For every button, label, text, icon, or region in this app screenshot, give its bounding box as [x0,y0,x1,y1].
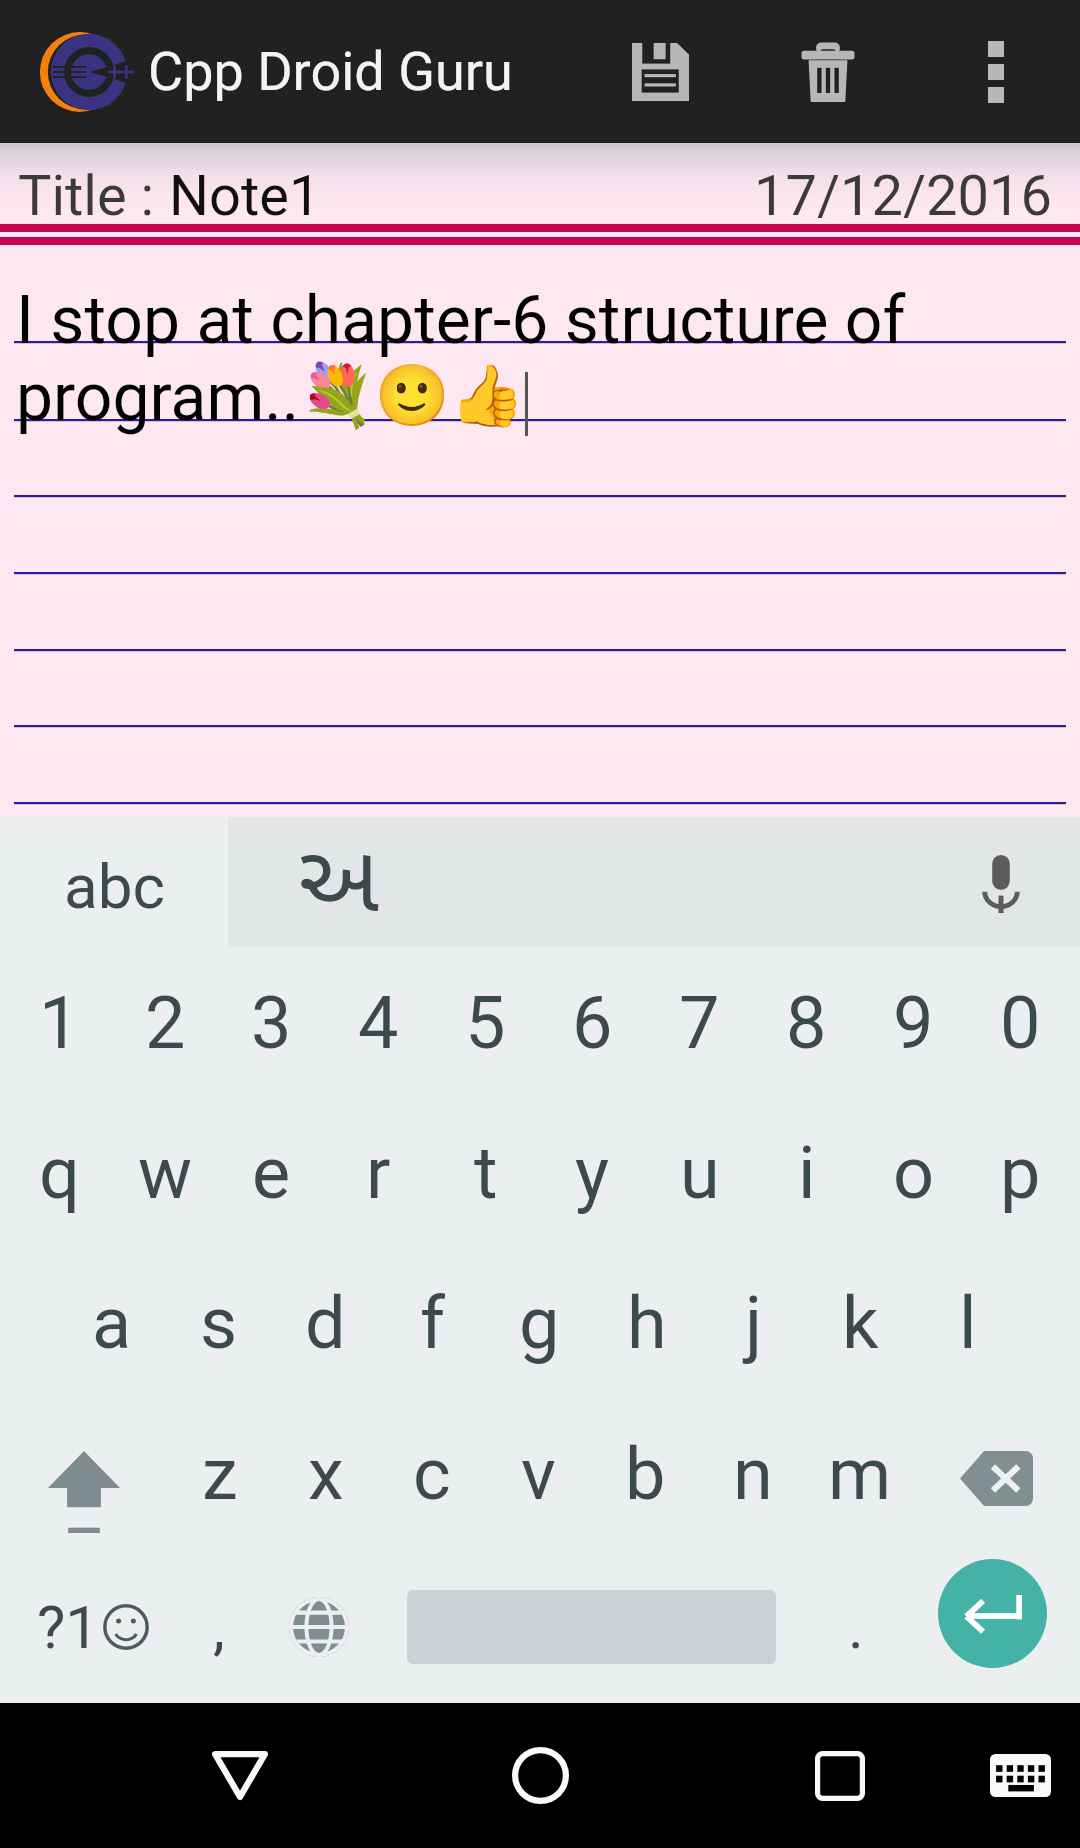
staticText: p [1000,1131,1041,1215]
button[interactable]: Backspace [913,1398,1080,1550]
button[interactable]: a [59,1248,165,1398]
staticText: f [420,1281,446,1365]
staticText: 9 [893,981,934,1065]
button[interactable]: અ [228,817,1080,947]
button[interactable]: 9 [860,947,967,1098]
staticText: 2 [145,981,186,1065]
staticText: 💐🙂👍 [300,360,525,430]
button[interactable]: q [6,1098,112,1248]
button[interactable]: v [485,1398,592,1550]
button[interactable]: m [806,1398,913,1550]
staticText: q [39,1131,80,1215]
staticText: Note1 [169,163,321,229]
button[interactable]: Voice input [966,834,1036,930]
button[interactable] [407,1550,776,1703]
button[interactable]: w [112,1098,218,1248]
staticText: j [745,1281,763,1365]
staticText: 1 [39,981,80,1065]
staticText: r [366,1131,391,1215]
staticText: 7 [679,981,720,1065]
staticText: v [521,1432,556,1516]
button[interactable]: Delete [744,0,912,143]
staticText: program.. [16,359,300,436]
staticText: 0 [1000,981,1041,1065]
button[interactable]: . [776,1550,936,1703]
staticText: d [305,1281,346,1365]
button[interactable]: 6 [539,947,646,1098]
button[interactable]: o [860,1098,967,1248]
button[interactable]: i [753,1098,860,1248]
staticText: ?1 [37,1592,100,1662]
staticText: Cpp Droid Guru [148,40,513,103]
button[interactable]: n [699,1398,806,1550]
staticText: z [202,1432,238,1516]
staticText: . [848,1592,864,1662]
button[interactable]: 3 [218,947,325,1098]
staticText: u [680,1131,720,1215]
staticText: abc [64,850,165,923]
button[interactable]: 2 [112,947,218,1098]
button[interactable]: Home [470,1703,610,1848]
staticText: 8 [786,981,827,1065]
button[interactable]: r [325,1098,432,1248]
button[interactable]: 5 [432,947,539,1098]
staticText: c [413,1432,451,1516]
staticText: w [138,1131,193,1215]
button[interactable]: 1 [6,947,112,1098]
staticText: Title : [18,163,169,229]
staticText: b [625,1432,666,1516]
button[interactable]: s [165,1248,272,1398]
staticText: n [733,1432,773,1516]
button[interactable]: 7 [646,947,753,1098]
staticText: 4 [358,981,399,1065]
staticText: 3 [251,981,292,1065]
button[interactable]: Hide keyboard [990,1703,1080,1848]
staticText: y [575,1131,610,1215]
staticText: 6 [572,981,613,1065]
button[interactable]: t [432,1098,539,1248]
button[interactable]: f [379,1248,486,1398]
staticText: m [828,1432,892,1516]
button[interactable]: c [379,1398,485,1550]
button[interactable]: 8 [753,947,860,1098]
staticText: g [519,1281,560,1365]
button[interactable]: Recents [770,1703,910,1848]
button[interactable]: z [167,1398,273,1550]
button[interactable]: Change language [252,1550,385,1703]
button[interactable]: y [539,1098,646,1248]
button[interactable]: j [700,1248,807,1398]
button[interactable]: 0 [967,947,1074,1098]
button[interactable]: Shift [0,1398,167,1550]
staticText: અ [298,813,380,938]
staticText: , [213,1592,225,1662]
button[interactable]: d [272,1248,379,1398]
staticText: 17/12/2016 [754,163,1052,229]
staticText: t [474,1131,498,1215]
button[interactable]: e [218,1098,325,1248]
staticText: e [252,1131,291,1215]
button[interactable]: Enter [938,1537,1080,1690]
button[interactable]: , [186,1550,252,1703]
button[interactable]: k [807,1248,914,1398]
button[interactable]: 4 [325,947,432,1098]
button[interactable]: I stop at chapter-6 structure of [0,245,1080,817]
staticText: o [893,1131,935,1215]
staticText: a [92,1281,132,1365]
button[interactable]: More options [912,0,1080,143]
button[interactable]: h [593,1248,700,1398]
button[interactable]: Save [576,0,744,143]
button[interactable]: x [273,1398,379,1550]
staticText: k [842,1281,879,1365]
button[interactable]: p [967,1098,1074,1248]
staticText: x [308,1432,344,1516]
staticText: 5 [465,981,506,1065]
button[interactable]: g [486,1248,593,1398]
button[interactable]: b [592,1398,699,1550]
button[interactable]: u [646,1098,753,1248]
button[interactable]: abc [0,817,228,947]
button[interactable]: Back [170,1703,310,1848]
button[interactable]: ?1 [0,1550,186,1703]
staticText: I stop at chapter-6 structure of [16,282,906,359]
staticText: i [798,1131,816,1215]
button[interactable]: l [914,1248,1021,1398]
